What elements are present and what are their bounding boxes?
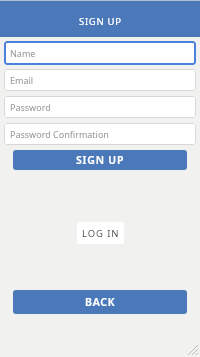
button[interactable]: SIGN UP xyxy=(13,150,187,170)
button[interactable]: Password Confirmation xyxy=(4,123,196,145)
button[interactable]: LOG IN xyxy=(77,222,124,244)
staticText: BACK xyxy=(85,295,116,309)
button[interactable]: BACK xyxy=(13,290,187,314)
button[interactable]: Name xyxy=(4,41,196,65)
staticText: Password xyxy=(10,101,51,113)
staticText: LOG IN xyxy=(82,227,120,240)
button[interactable]: Password xyxy=(4,96,196,118)
staticText: Name xyxy=(10,47,36,59)
staticText: SIGN UP xyxy=(76,153,125,167)
staticText: Email xyxy=(10,74,34,86)
button[interactable]: SIGN UP xyxy=(0,1,200,37)
button[interactable]: Email xyxy=(4,69,196,91)
staticText: Password Confirmation xyxy=(10,128,109,140)
staticText: SIGN UP xyxy=(79,15,122,28)
